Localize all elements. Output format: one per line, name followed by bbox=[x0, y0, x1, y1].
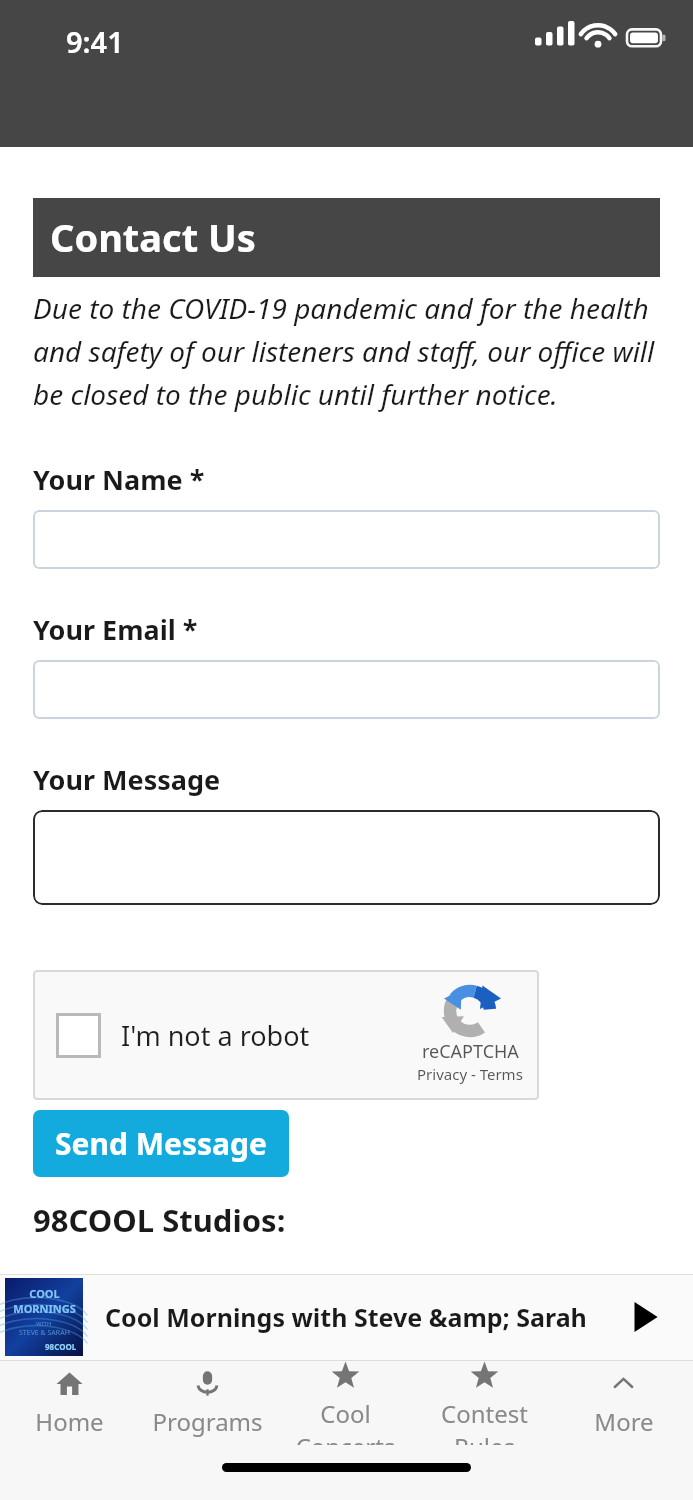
staticText: Send Message bbox=[55, 1123, 267, 1164]
staticText: Privacy - Terms bbox=[417, 1064, 523, 1084]
staticText: COOL bbox=[29, 1286, 60, 1301]
staticText: Your Email * bbox=[33, 611, 198, 648]
staticText: 98COOL bbox=[45, 1341, 77, 1352]
staticText: Cool Mornings with Steve &amp; Sarah bbox=[105, 1300, 613, 1334]
button[interactable]: I'm not a robot checkbox bbox=[56, 1013, 101, 1058]
staticText: MORNINGS bbox=[13, 1301, 76, 1316]
button[interactable] bbox=[33, 510, 660, 569]
staticText: Home bbox=[35, 1405, 104, 1438]
button[interactable]: More bbox=[554, 1361, 693, 1445]
staticText: 9:41 bbox=[66, 22, 124, 61]
staticText: Due to the COVID-19 pandemic and for the… bbox=[33, 289, 660, 413]
staticText: Your Message bbox=[33, 761, 221, 798]
button[interactable]: Play bbox=[613, 1285, 677, 1349]
button[interactable]: Home bbox=[0, 1361, 138, 1445]
staticText: 98COOL Studios: bbox=[33, 1199, 286, 1241]
staticText: Contest Rules bbox=[415, 1397, 554, 1445]
staticText: reCAPTCHA bbox=[422, 1039, 519, 1064]
staticText: STEVE & SARAH bbox=[19, 1328, 70, 1338]
button[interactable]: I'm not a robot checkbox bbox=[33, 970, 539, 1100]
button[interactable]: Contest Rules bbox=[415, 1361, 554, 1445]
button[interactable]: COOL bbox=[0, 1274, 693, 1360]
staticText: Cool Concerts bbox=[276, 1397, 415, 1445]
button[interactable] bbox=[33, 810, 660, 905]
button[interactable]: Send Message bbox=[33, 1110, 289, 1177]
staticText: More bbox=[594, 1405, 654, 1438]
staticText: Your Name * bbox=[33, 461, 205, 498]
button[interactable] bbox=[33, 660, 660, 719]
button[interactable]: Cool Concerts bbox=[276, 1361, 415, 1445]
staticText: WITH bbox=[36, 1320, 52, 1328]
staticText: Contact Us bbox=[50, 211, 256, 263]
staticText: Programs bbox=[152, 1405, 263, 1438]
button[interactable]: Programs bbox=[138, 1361, 276, 1445]
staticText: I'm not a robot bbox=[121, 1017, 310, 1054]
